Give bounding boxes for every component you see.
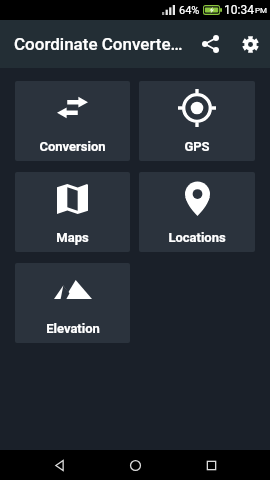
button[interactable]: Home	[118, 450, 152, 480]
staticText: 64%	[179, 4, 200, 17]
button[interactable]: Maps	[15, 172, 130, 252]
button[interactable]: Back	[42, 450, 76, 480]
staticText: Coordinate Converte…	[14, 34, 183, 54]
staticText: PM	[255, 6, 268, 15]
button[interactable]: GPS	[139, 81, 255, 161]
staticText: Elevation	[46, 321, 100, 336]
staticText: 10:34	[224, 3, 254, 17]
button[interactable]: Locations	[139, 172, 255, 252]
button[interactable]: Conversion	[15, 81, 130, 161]
button[interactable]: Elevation	[15, 263, 130, 343]
button[interactable]: Settings	[234, 28, 266, 60]
button[interactable]: Share	[194, 28, 226, 60]
staticText: Maps	[56, 230, 89, 245]
staticText: Locations	[168, 230, 226, 245]
button[interactable]: Recents	[194, 450, 228, 480]
staticText: GPS	[184, 139, 210, 154]
staticText: Conversion	[39, 139, 106, 154]
